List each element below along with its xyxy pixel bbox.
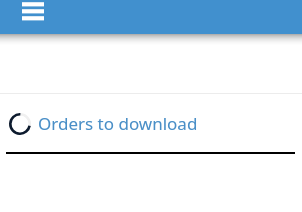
staticText: Orders to download (38, 112, 198, 135)
other: Loading (9, 113, 31, 135)
button[interactable]: Open navigation menu (14, 0, 52, 30)
button[interactable]: Loading (0, 94, 302, 152)
